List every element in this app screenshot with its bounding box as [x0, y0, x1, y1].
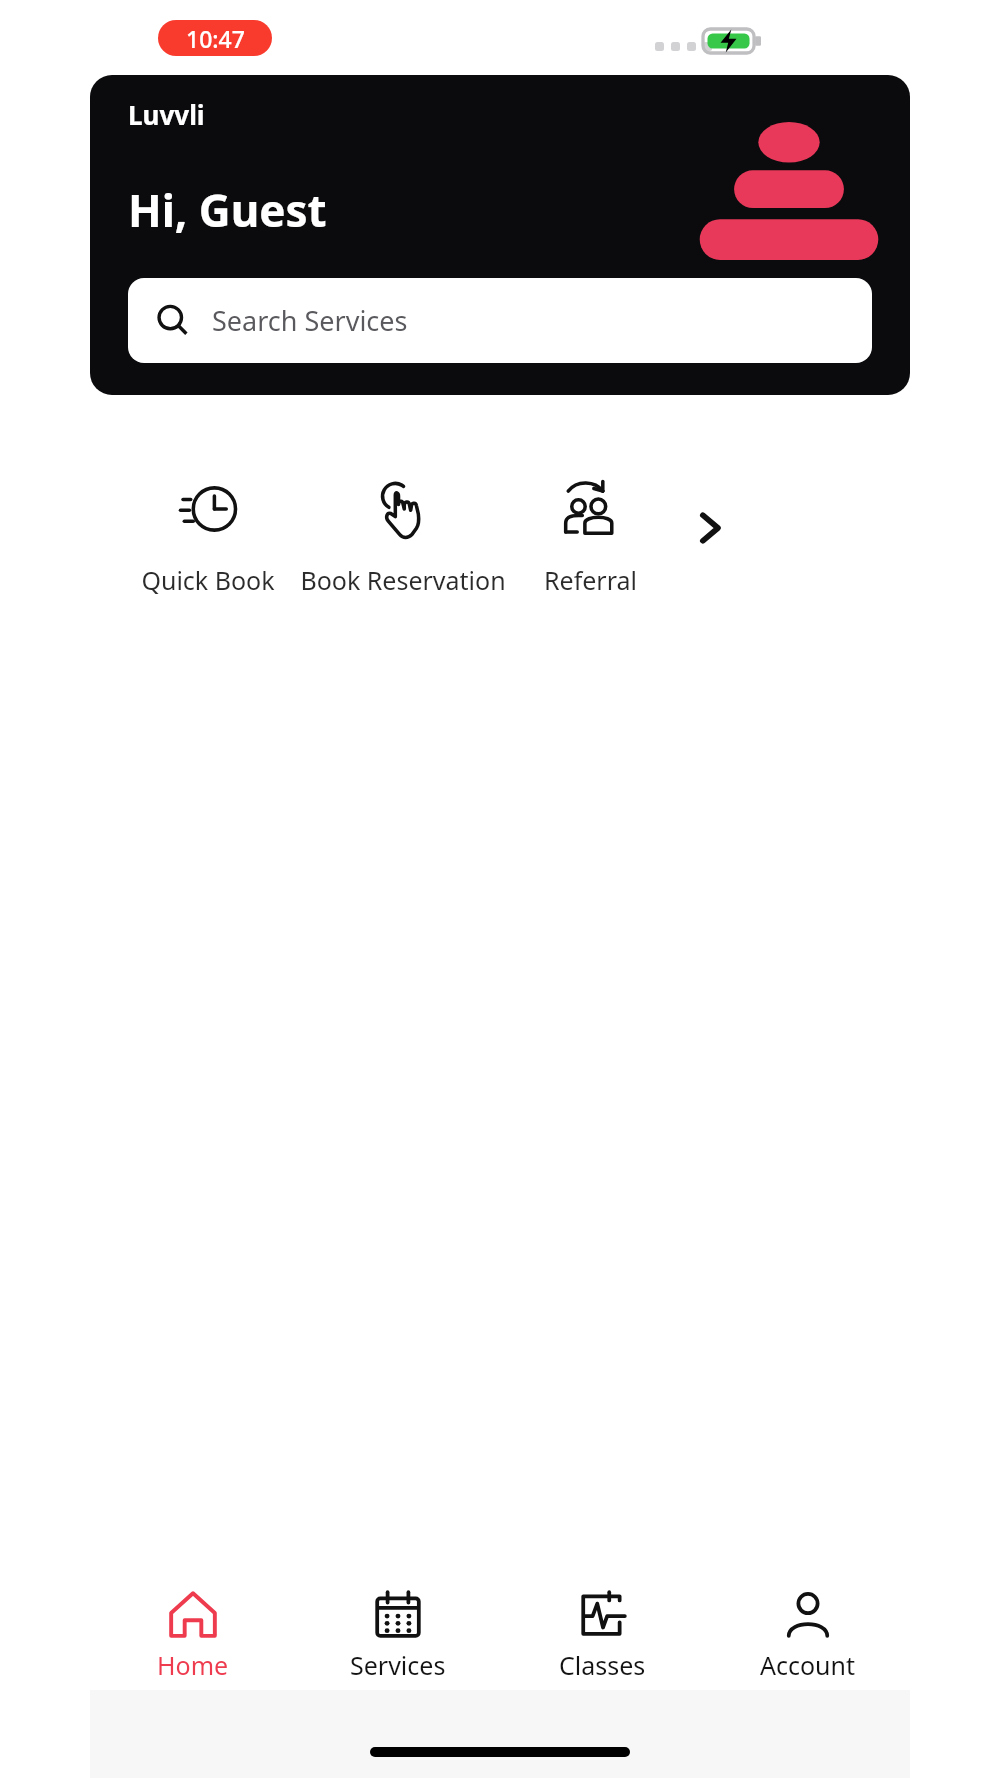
staticText: Book Reservation — [300, 563, 506, 597]
staticText: Quick Book — [141, 563, 275, 597]
staticText: Search Services — [212, 302, 408, 339]
staticText: 10:47 — [186, 23, 245, 54]
button[interactable]: Search Services — [128, 278, 872, 363]
button[interactable]: Quick Book — [120, 473, 295, 601]
staticText: Classes — [559, 1648, 646, 1682]
button[interactable]: Book Reservation — [295, 473, 510, 601]
staticText: Referral — [544, 563, 637, 597]
staticText: Luvvli — [128, 97, 205, 132]
button[interactable]: Referral — [510, 473, 670, 601]
staticText: Home — [157, 1648, 229, 1682]
button[interactable]: More actions — [670, 473, 750, 583]
button[interactable]: Classes — [500, 1582, 705, 1688]
staticText: Account — [760, 1648, 856, 1682]
button[interactable]: Account — [705, 1582, 910, 1688]
button[interactable]: Services — [295, 1582, 500, 1688]
staticText: Hi, Guest — [128, 180, 327, 240]
staticText: Services — [350, 1648, 446, 1682]
button[interactable]: Home — [90, 1582, 295, 1688]
